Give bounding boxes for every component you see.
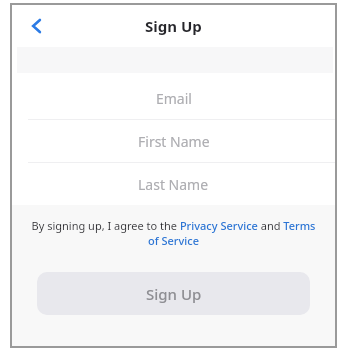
- staticText: First Name: [138, 132, 210, 151]
- button[interactable]: First Name: [12, 120, 335, 162]
- button[interactable]: Back: [20, 9, 54, 43]
- staticText: Sign Up: [146, 284, 202, 304]
- button[interactable]: Email: [12, 77, 335, 119]
- button[interactable]: By signing up, I agree to the Privacy Se…: [30, 218, 317, 248]
- staticText: Sign Up: [145, 16, 202, 36]
- button[interactable]: Last Name: [12, 163, 335, 205]
- staticText: By signing up, I agree to the Privacy Se…: [30, 218, 317, 248]
- staticText: Email: [156, 89, 192, 108]
- button[interactable]: Sign Up: [37, 272, 310, 315]
- staticText: Last Name: [138, 175, 209, 194]
